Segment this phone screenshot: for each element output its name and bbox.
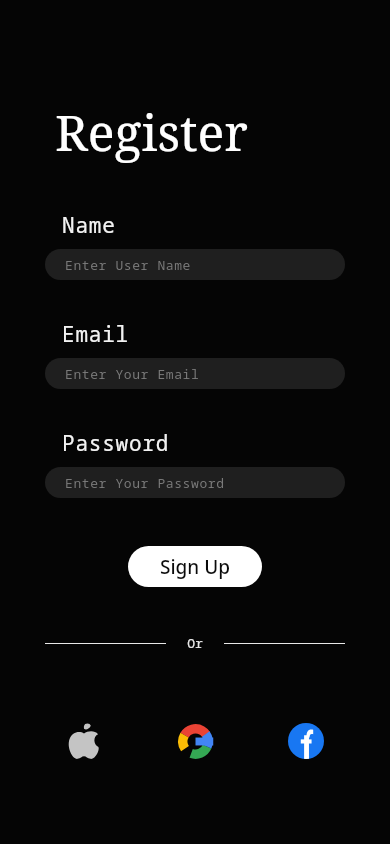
staticText: Sign Up (160, 554, 231, 580)
button[interactable]: Enter Your Password (45, 467, 345, 498)
staticText: Enter User Name (65, 256, 192, 274)
button[interactable]: Enter User Name (45, 249, 345, 280)
staticText: Enter Your Email (65, 365, 200, 383)
button[interactable]: Sign up with Google (173, 719, 217, 763)
staticText: Or (187, 634, 203, 652)
button[interactable]: Sign Up (128, 546, 262, 587)
staticText: Email (62, 320, 129, 349)
staticText: Name (62, 211, 116, 240)
button[interactable]: Sign up with Apple (62, 719, 106, 763)
staticText: Register (55, 98, 248, 166)
button[interactable]: Enter Your Email (45, 358, 345, 389)
staticText: Password (62, 429, 170, 458)
staticText: Enter Your Password (65, 474, 225, 492)
button[interactable]: Sign up with Facebook (284, 719, 328, 763)
